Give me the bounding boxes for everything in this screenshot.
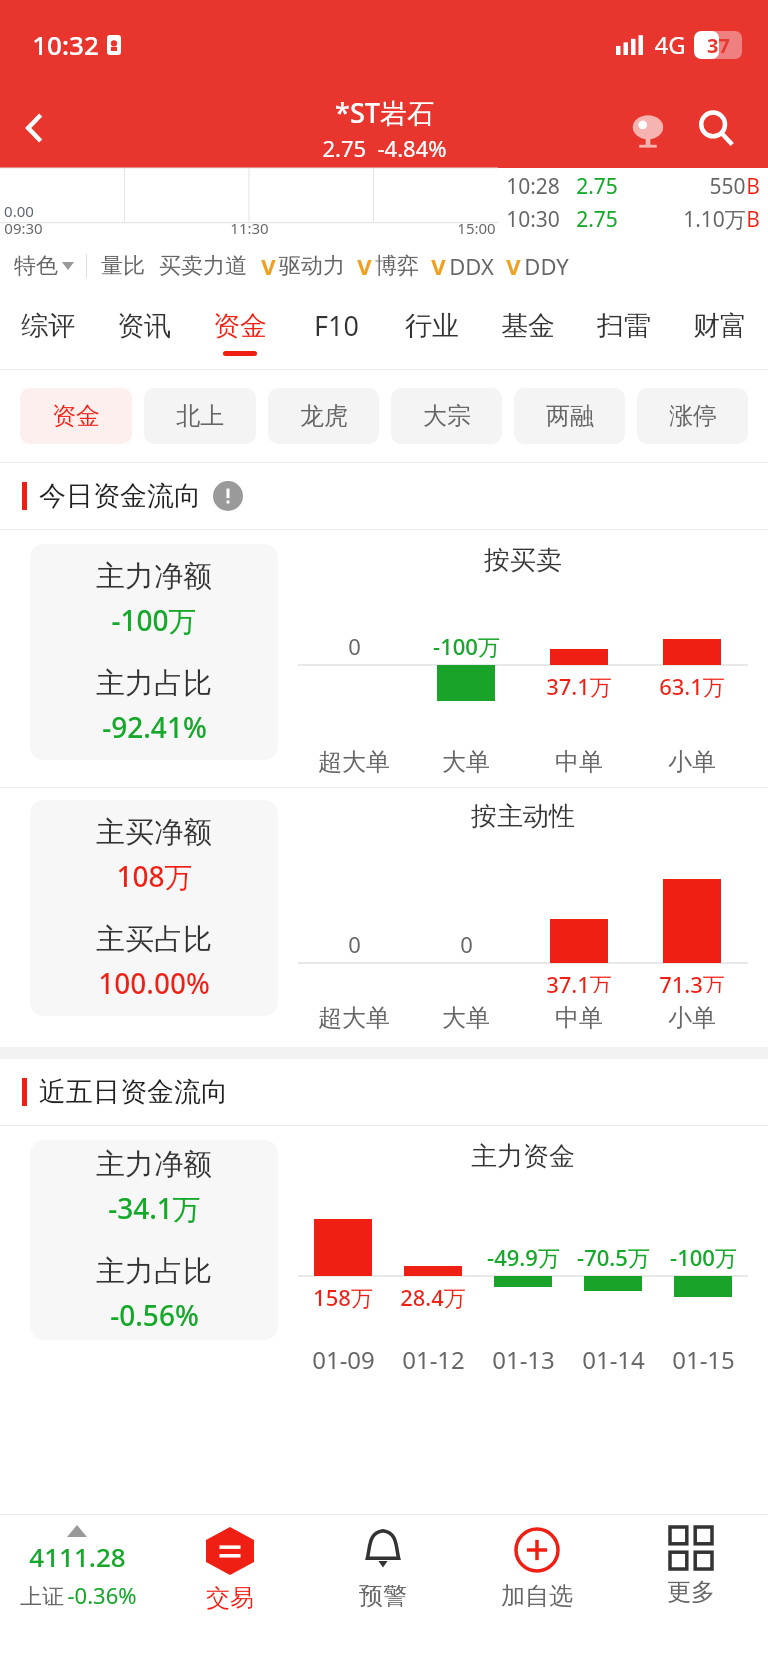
button[interactable]: 基金 [480, 294, 576, 370]
staticText: 01-14 [582, 1343, 645, 1376]
staticText: -70.5万 [577, 1242, 650, 1272]
staticText: 大单 [442, 747, 490, 777]
staticText: 1.10万 [683, 205, 746, 234]
staticText: 加自选 [501, 1581, 573, 1611]
staticText: 0 [460, 929, 473, 959]
button[interactable]: 4111.28 [0, 1515, 153, 1663]
button[interactable]: 两融 [514, 388, 625, 444]
button[interactable]: 加自选 [460, 1515, 614, 1663]
button[interactable]: 北上 [144, 388, 256, 444]
staticText: 63.1万 [659, 671, 725, 701]
staticText: 中单 [555, 1003, 603, 1033]
staticText: 0 [348, 631, 361, 661]
staticText: 主力净额 [96, 1146, 212, 1183]
staticText: 超大单 [318, 1003, 390, 1033]
button[interactable]: 涨停 [637, 388, 748, 444]
staticText: 158万 [313, 1282, 373, 1312]
button[interactable]: 龙虎 [268, 388, 379, 444]
button[interactable]: F10 [288, 294, 384, 370]
staticText: 综评 [21, 309, 75, 343]
button[interactable]: 资金 [192, 294, 288, 370]
staticText: 主买净额 [96, 814, 212, 851]
staticText: 近五日资金流向 [39, 1075, 228, 1109]
button[interactable]: V [506, 251, 569, 281]
button[interactable]: 主力净额 [30, 544, 278, 760]
staticText: -49.9万 [487, 1242, 560, 1272]
staticText: V [506, 251, 521, 281]
staticText: DDY [524, 251, 569, 281]
staticText: 主买占比 [96, 921, 212, 958]
staticText: 4111.28 [29, 1539, 126, 1574]
staticText: 按买卖 [484, 544, 562, 577]
staticText: 资讯 [117, 309, 171, 343]
staticText: 0.00 [4, 201, 34, 221]
button[interactable]: Assistant [616, 96, 680, 160]
staticText: 15:00 [457, 218, 496, 238]
staticText: 资金 [52, 401, 100, 431]
staticText: 71.3万 [659, 969, 725, 993]
staticText: 行业 [405, 309, 459, 343]
button[interactable]: V [261, 251, 345, 281]
button[interactable]: 行业 [384, 294, 480, 370]
staticText: 2.75 [576, 172, 618, 201]
staticText: 大宗 [423, 401, 471, 431]
button[interactable]: 更多 [614, 1515, 768, 1663]
button[interactable]: 综评 [0, 294, 96, 370]
staticText: 10:28 [506, 172, 560, 201]
staticText: 主力资金 [471, 1140, 575, 1173]
button[interactable]: 主力净额 [30, 1140, 278, 1340]
button[interactable]: 扫雷 [576, 294, 672, 370]
staticText: -34.1万 [108, 1189, 201, 1227]
staticText: 涨停 [669, 401, 717, 431]
staticText: 今日资金流向 [39, 479, 201, 513]
button[interactable]: Back [0, 92, 72, 164]
staticText: 2.75 [576, 205, 618, 234]
staticText: 37.1万 [546, 969, 612, 993]
staticText: 基金 [501, 309, 555, 343]
button[interactable]: 财富 [672, 294, 768, 370]
button[interactable]: V [357, 251, 419, 281]
staticText: F10 [314, 307, 359, 344]
staticText: 01-15 [672, 1343, 735, 1376]
staticText: 0 [348, 929, 361, 959]
staticText: 扫雷 [597, 309, 651, 343]
button[interactable]: 买卖力道 [159, 252, 247, 280]
staticText: V [261, 251, 276, 281]
staticText: 37 [707, 32, 730, 59]
button[interactable]: V [431, 251, 494, 281]
button[interactable]: 大宗 [391, 388, 502, 444]
button[interactable]: 主买净额 [30, 800, 278, 1016]
staticText: 超大单 [318, 747, 390, 777]
staticText: 01-13 [492, 1343, 555, 1376]
staticText: 更多 [667, 1577, 715, 1607]
staticText: 28.4万 [400, 1282, 466, 1312]
staticText: 北上 [176, 401, 224, 431]
button[interactable]: 资讯 [96, 294, 192, 370]
staticText: -100万 [670, 1242, 737, 1272]
button[interactable]: 交易 [153, 1515, 306, 1663]
button[interactable]: 特色 [14, 252, 74, 280]
staticText: 两融 [546, 401, 594, 431]
staticText: 10:30 [506, 205, 560, 234]
button[interactable]: 预警 [306, 1515, 460, 1663]
button[interactable]: 量比 [101, 252, 145, 280]
staticText: *ST岩石 [335, 94, 434, 131]
staticText: 09:30 [4, 218, 43, 238]
staticText: -100万 [111, 601, 197, 639]
staticText: 108万 [116, 857, 193, 895]
staticText: 01-09 [312, 1343, 375, 1376]
staticText: 小单 [668, 1003, 716, 1033]
staticText: 中单 [555, 747, 603, 777]
button[interactable]: 资金 [20, 388, 132, 444]
staticText: 交易 [206, 1583, 254, 1613]
staticText: 11:30 [230, 218, 269, 238]
button[interactable]: Info [213, 481, 243, 511]
button[interactable]: Search [684, 96, 748, 160]
staticText: 01-12 [402, 1343, 465, 1376]
staticText: 龙虎 [300, 401, 348, 431]
staticText: 博弈 [375, 252, 419, 280]
staticText: 37.1万 [546, 671, 612, 701]
staticText: 2.75 -4.84% [322, 133, 447, 163]
staticText: 小单 [668, 747, 716, 777]
staticText: 4G [654, 28, 686, 61]
